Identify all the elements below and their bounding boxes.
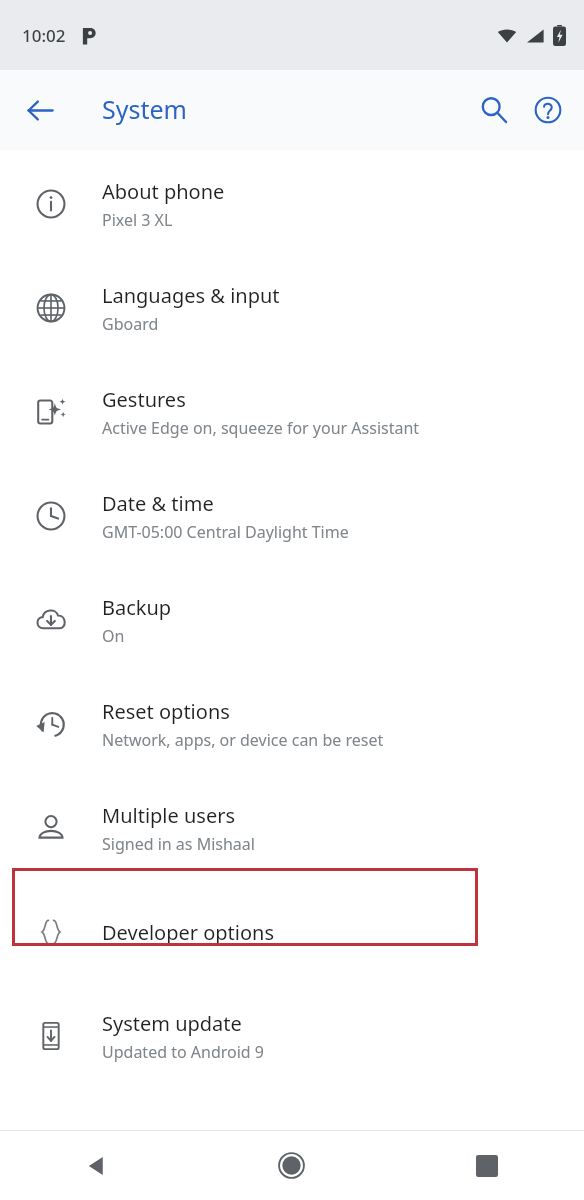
button[interactable]: Back: [0, 1131, 194, 1200]
button[interactable]: Recent apps: [389, 1131, 584, 1200]
staticText: On: [102, 625, 125, 647]
staticText: Network, apps, or device can be reset: [102, 729, 384, 751]
staticText: Date & time: [102, 490, 214, 517]
button[interactable]: Search: [464, 80, 524, 140]
staticText: Updated to Android 9: [102, 1041, 264, 1063]
button[interactable]: Reset options: [0, 672, 584, 776]
staticText: Gboard: [102, 313, 159, 335]
button[interactable]: Multiple users: [0, 776, 584, 880]
staticText: Multiple users: [102, 802, 236, 829]
staticText: Developer options: [102, 919, 275, 946]
button[interactable]: Help: [518, 80, 578, 140]
staticText: Signed in as Mishaal: [102, 833, 255, 855]
staticText: Backup: [102, 594, 172, 621]
staticText: Gestures: [102, 386, 186, 413]
button[interactable]: Languages & input: [0, 256, 584, 360]
button[interactable]: Gestures: [0, 360, 584, 464]
button[interactable]: Back: [10, 80, 70, 140]
staticText: Languages & input: [102, 282, 280, 309]
staticText: About phone: [102, 178, 225, 205]
button[interactable]: About phone: [0, 152, 584, 256]
staticText: Active Edge on, squeeze for your Assista…: [102, 417, 420, 439]
staticText: System update: [102, 1010, 242, 1037]
staticText: 10:02: [22, 24, 66, 47]
button[interactable]: Home: [194, 1131, 389, 1200]
staticText: Reset options: [102, 698, 230, 725]
staticText: GMT-05:00 Central Daylight Time: [102, 521, 349, 543]
button[interactable]: Developer options: [0, 880, 584, 984]
staticText: System: [102, 92, 187, 126]
button[interactable]: Date & time: [0, 464, 584, 568]
button[interactable]: System update: [0, 984, 584, 1088]
staticText: Pixel 3 XL: [102, 209, 173, 231]
button[interactable]: Backup: [0, 568, 584, 672]
